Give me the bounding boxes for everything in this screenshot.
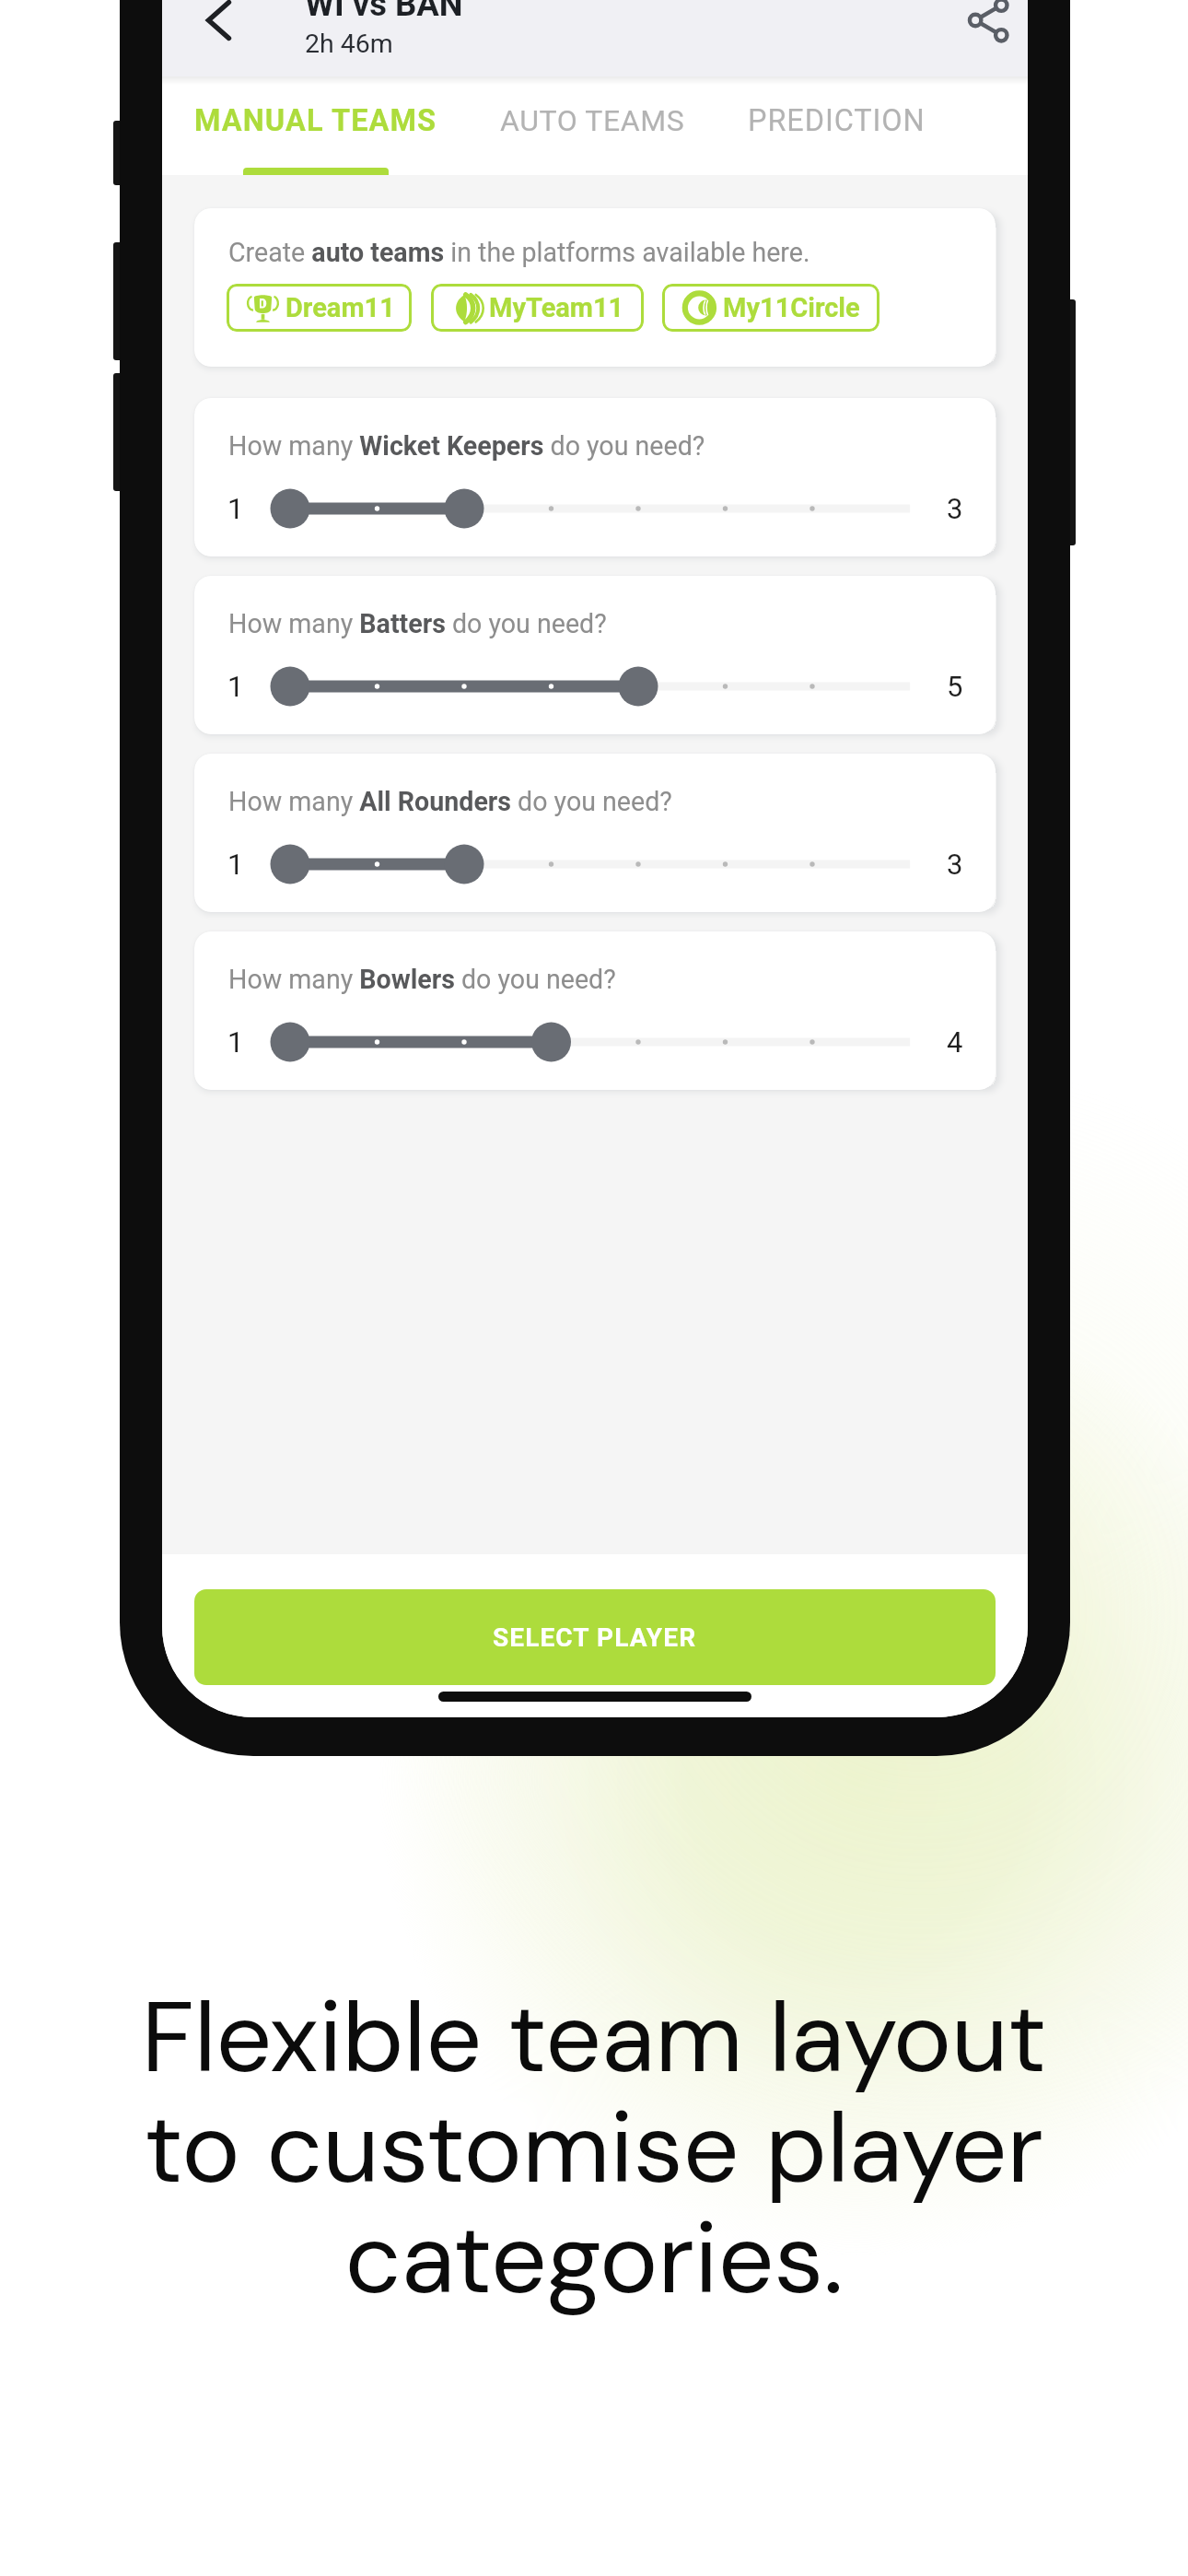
staticText: 1 (227, 670, 244, 703)
staticText: 1 (227, 1025, 244, 1059)
button[interactable] (268, 486, 930, 531)
staticText: Create auto teams in the platforms avail… (228, 237, 810, 268)
button[interactable]: PREDICTION (716, 88, 957, 153)
staticText: MANUAL TEAMS (194, 103, 437, 138)
staticText: Dream11 (285, 292, 395, 323)
button[interactable]: SELECT PLAYER (194, 1589, 996, 1685)
staticText: My11Circle (723, 292, 860, 323)
staticText: 3 (947, 848, 963, 881)
staticText: 4 (947, 1025, 963, 1059)
staticText: SELECT PLAYER (493, 1622, 697, 1653)
staticText: PREDICTION (748, 103, 926, 138)
staticText: 2h 46m (305, 29, 393, 59)
staticText: Flexible team layout to customise player… (0, 1973, 1188, 2324)
staticText: 1 (227, 848, 244, 881)
button[interactable]: Share (947, 0, 1028, 62)
button[interactable] (268, 1020, 930, 1064)
button[interactable]: Dream11 (227, 284, 412, 332)
staticText: MyTeam11 (489, 292, 624, 323)
staticText: How many Batters do you need? (228, 608, 607, 639)
button[interactable]: AUTO TEAMS (469, 88, 716, 153)
staticText: How many All Rounders do you need? (228, 786, 672, 817)
staticText: 1 (227, 492, 244, 525)
button[interactable]: My11Circle (662, 284, 879, 332)
button[interactable]: MyTeam11 (431, 284, 644, 332)
staticText: WI vs BAN (305, 0, 463, 24)
staticText: How many Wicket Keepers do you need? (228, 430, 705, 462)
staticText: AUTO TEAMS (500, 103, 685, 138)
button[interactable] (268, 842, 930, 886)
button[interactable]: Back (177, 0, 260, 62)
staticText: How many Bowlers do you need? (228, 964, 616, 995)
button[interactable]: MANUAL TEAMS (166, 88, 469, 153)
staticText: 3 (947, 492, 963, 525)
staticText: 5 (947, 670, 963, 703)
button[interactable] (268, 664, 930, 708)
